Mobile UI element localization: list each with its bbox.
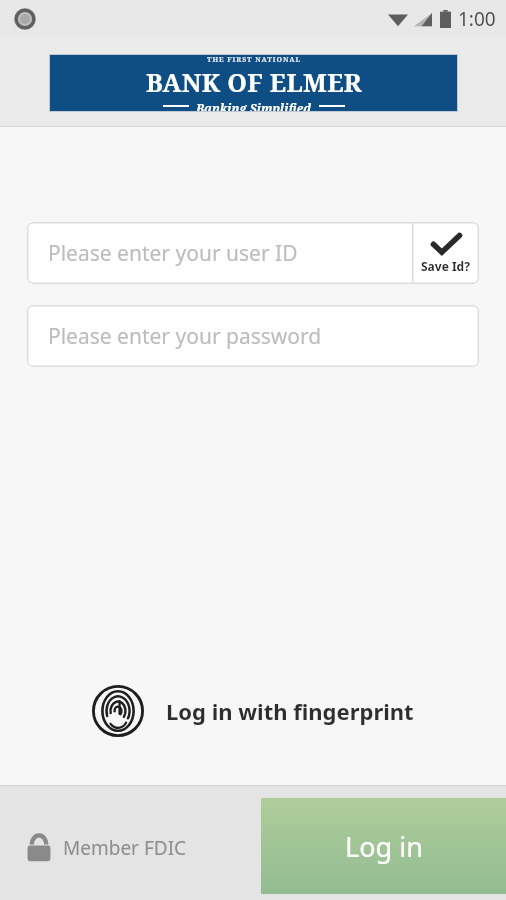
staticText: Log in with fingerprint: [166, 696, 414, 726]
button[interactable]: Please enter your user ID: [27, 222, 479, 284]
staticText: Please enter your password: [48, 322, 322, 351]
button[interactable]: THE FIRST NATIONAL: [50, 55, 457, 111]
staticText: BANK OF ELMER: [146, 65, 362, 99]
button[interactable]: Save Id: [412, 222, 479, 284]
button[interactable]: Member FDIC: [26, 833, 187, 863]
staticText: Member FDIC: [63, 835, 187, 861]
button[interactable]: Please enter your password: [27, 305, 479, 367]
staticText: Banking Simplified: [196, 100, 312, 111]
button[interactable]: Log in with fingerprint: [60, 685, 446, 737]
staticText: Please enter your user ID: [48, 239, 298, 268]
staticText: THE FIRST NATIONAL: [207, 55, 301, 65]
staticText: 1:00: [458, 6, 496, 32]
staticText: Save Id?: [421, 258, 470, 274]
button[interactable]: Log in: [261, 798, 506, 894]
staticText: Log in: [345, 828, 423, 865]
